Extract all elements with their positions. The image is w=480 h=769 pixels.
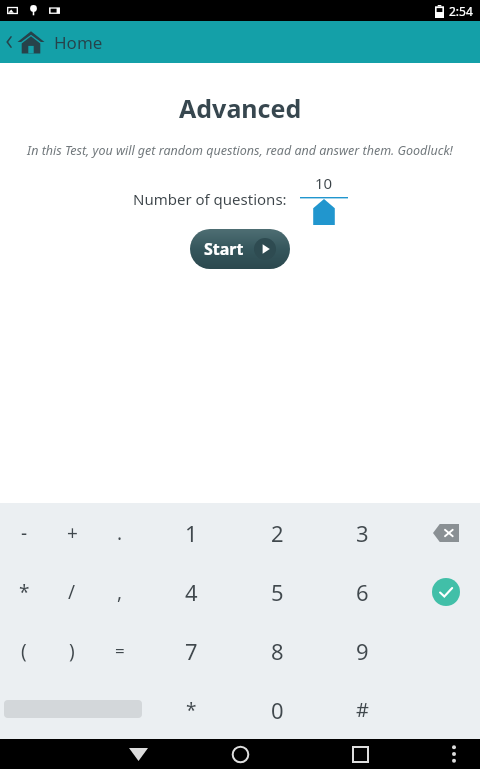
staticText: 7 — [185, 636, 198, 666]
staticText: 1 — [185, 518, 198, 548]
button[interactable]: 2 — [253, 503, 301, 562]
staticText: # — [356, 696, 369, 723]
other: Text cursor handle — [312, 199, 336, 225]
staticText: 8 — [271, 636, 284, 666]
button[interactable]: 6 — [338, 562, 386, 621]
staticText: 10 — [315, 173, 333, 193]
button[interactable]: ) — [48, 621, 96, 680]
button[interactable]: 10 — [300, 173, 348, 193]
staticText: / — [68, 579, 76, 605]
staticText: 3 — [356, 518, 369, 548]
button[interactable]: 9 — [338, 621, 386, 680]
staticText: , — [117, 579, 123, 605]
button[interactable]: # — [338, 680, 386, 739]
button[interactable]: / — [48, 562, 96, 621]
staticText: ) — [69, 638, 75, 664]
button[interactable]: 7 — [167, 621, 215, 680]
button[interactable]: - — [0, 503, 48, 562]
button[interactable]: ( — [0, 621, 48, 680]
button[interactable]: , — [96, 562, 144, 621]
button[interactable]: Recents — [336, 739, 384, 769]
button[interactable]: 8 — [253, 621, 301, 680]
button[interactable]: 1 — [167, 503, 215, 562]
staticText: 9 — [356, 636, 369, 666]
staticText: In this Test, you will get random questi… — [20, 142, 460, 159]
staticText: * — [19, 579, 30, 605]
staticText: ( — [21, 638, 27, 664]
staticText: = — [115, 639, 125, 662]
button[interactable]: Home — [0, 21, 480, 63]
button[interactable]: More options — [434, 739, 474, 769]
staticText: Number of questions: — [133, 189, 287, 209]
button[interactable]: 4 — [167, 562, 215, 621]
staticText: 0 — [271, 695, 284, 725]
button[interactable]: + — [48, 503, 96, 562]
button[interactable]: 3 — [338, 503, 386, 562]
staticText: 4 — [185, 577, 198, 607]
button[interactable]: Done — [422, 562, 470, 621]
button[interactable]: 0 — [253, 680, 301, 739]
staticText: - — [21, 520, 28, 546]
button[interactable]: . — [96, 503, 144, 562]
staticText: Start — [204, 238, 244, 260]
button[interactable]: * — [167, 680, 215, 739]
staticText: * — [186, 697, 197, 723]
staticText: Advanced — [179, 91, 302, 125]
button[interactable]: Back — [114, 739, 162, 769]
button[interactable]: = — [96, 621, 144, 680]
button[interactable]: Backspace — [422, 503, 470, 562]
staticText: Home — [54, 31, 103, 54]
button[interactable]: Start — [190, 229, 290, 269]
other: Home — [16, 27, 46, 57]
staticText: 5 — [271, 577, 284, 607]
staticText: 6 — [356, 577, 369, 607]
button[interactable]: * — [0, 562, 48, 621]
staticText: 2 — [271, 518, 284, 548]
button[interactable]: Home — [216, 739, 264, 769]
staticText: 2:54 — [449, 3, 473, 19]
button[interactable]: 5 — [253, 562, 301, 621]
staticText: + — [67, 520, 78, 546]
staticText: . — [117, 520, 123, 546]
